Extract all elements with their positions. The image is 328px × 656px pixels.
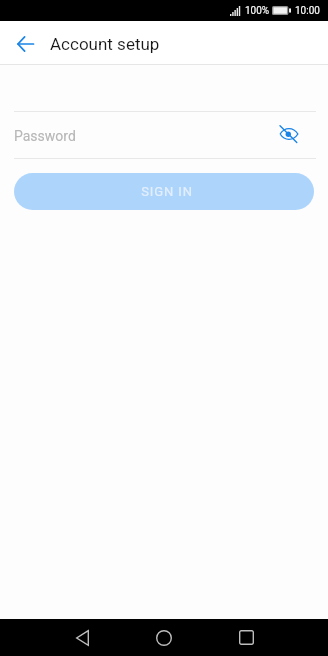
button[interactable]: Recent apps <box>222 619 270 656</box>
button[interactable]: Back <box>8 26 43 61</box>
staticText: 100% <box>245 5 270 17</box>
button[interactable]: SIGN IN <box>14 173 314 210</box>
button[interactable]: Toggle password visibility <box>277 122 301 146</box>
button[interactable]: Home <box>140 619 188 656</box>
button[interactable]: Back <box>58 619 106 656</box>
staticText: 10:00 <box>295 5 320 17</box>
staticText: Account setup <box>50 34 160 54</box>
staticText: SIGN IN <box>141 184 193 199</box>
staticText: Password <box>14 128 76 144</box>
